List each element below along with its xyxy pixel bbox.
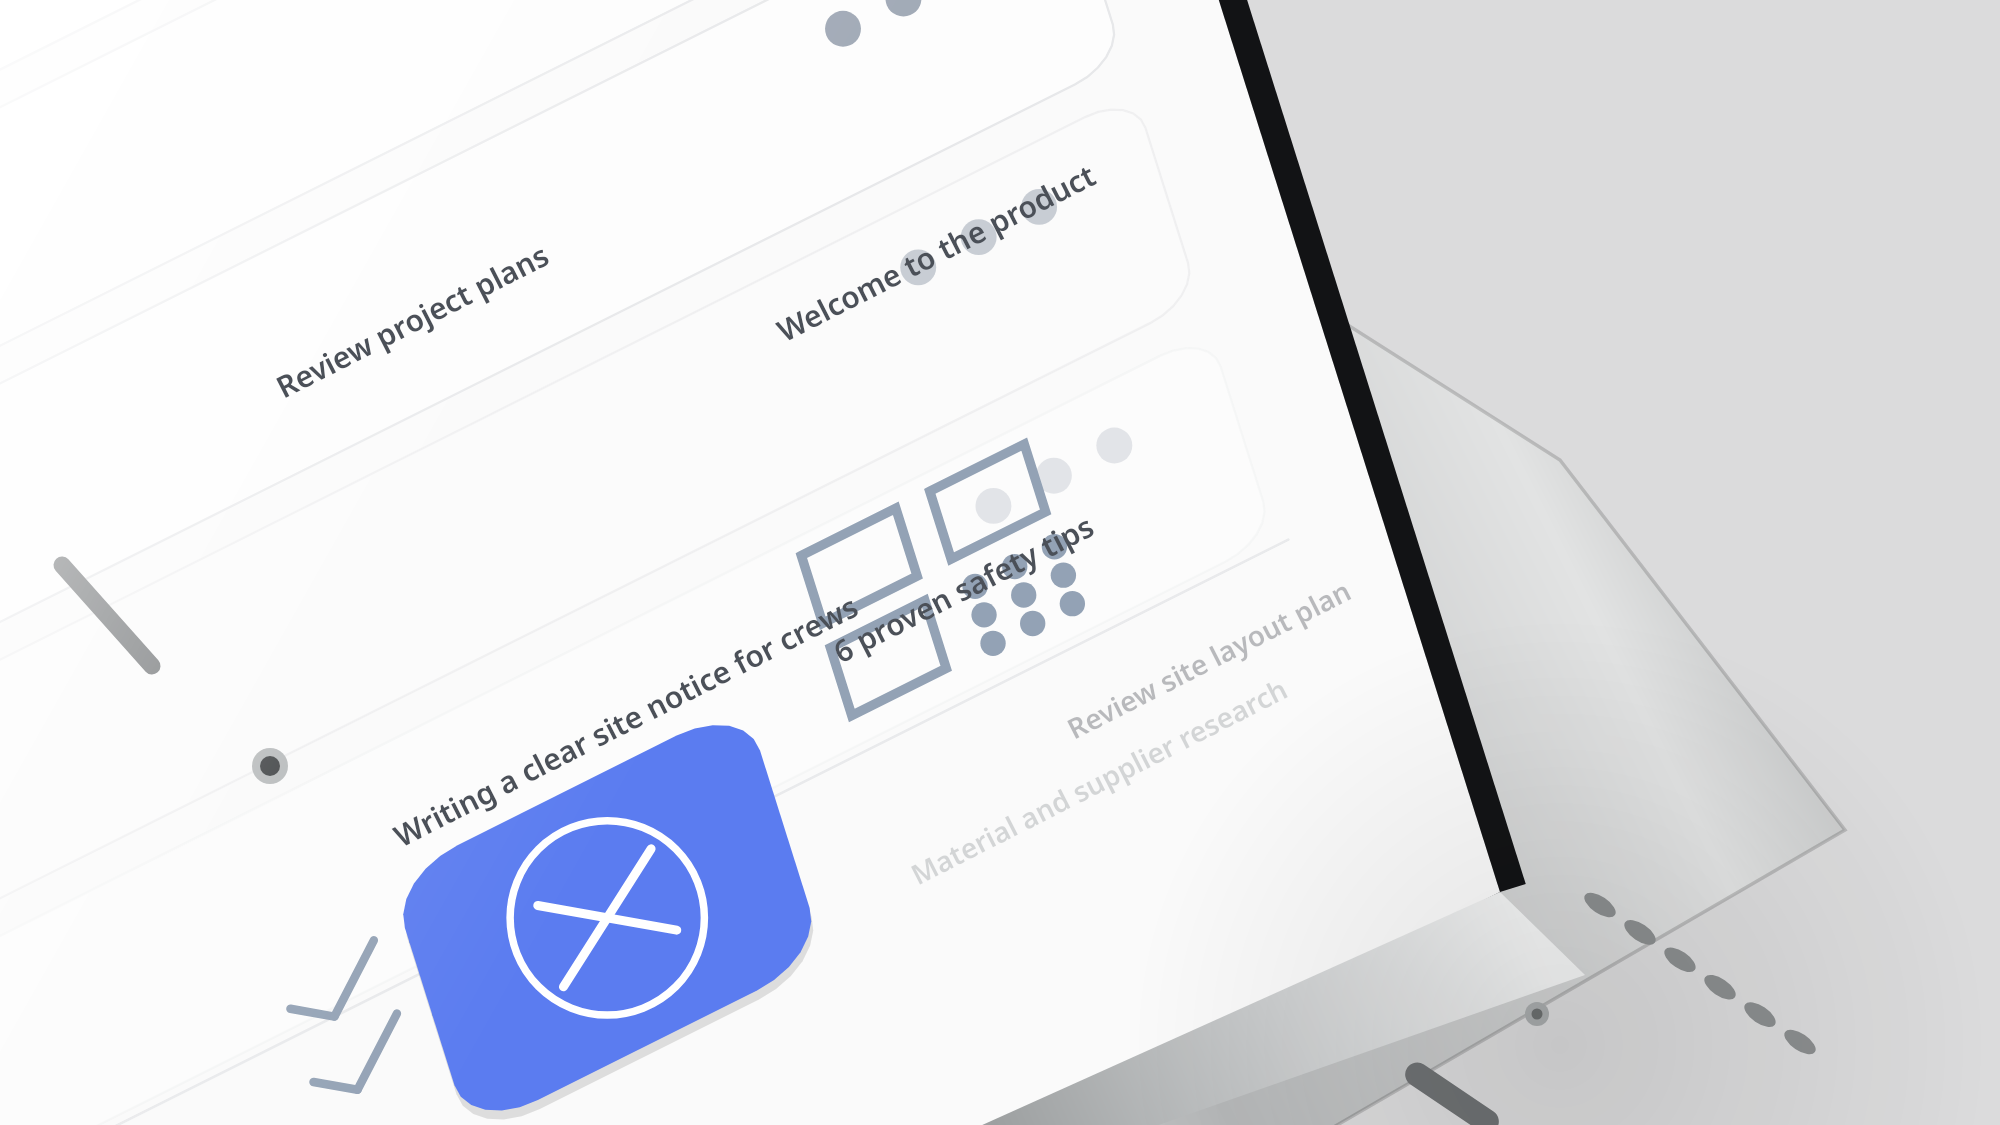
button[interactable]: Tasks	[1392, 756, 1502, 866]
button[interactable]: Material and supplier research	[904, 669, 1294, 893]
staticText: 6 proven safety tips	[826, 505, 1101, 672]
staticText: Review site layout plan	[1060, 571, 1357, 747]
button[interactable]: 6 proven safety tips	[826, 505, 1101, 672]
button[interactable]: Add note	[1150, 830, 1360, 1040]
button[interactable]: Welcome to the product	[770, 154, 1102, 351]
staticText: Welcome to the product	[770, 154, 1102, 351]
button[interactable]: Writing a clear site notice for crews	[387, 585, 865, 856]
button[interactable]: Review project plans	[269, 234, 556, 407]
button[interactable]: Review site layout plan	[1060, 571, 1357, 747]
staticText: Review project plans	[269, 234, 556, 407]
staticText: Material and supplier research	[904, 669, 1294, 893]
staticText: Writing a clear site notice for crews	[387, 585, 865, 856]
button[interactable]: Notes	[1012, 985, 1122, 1095]
